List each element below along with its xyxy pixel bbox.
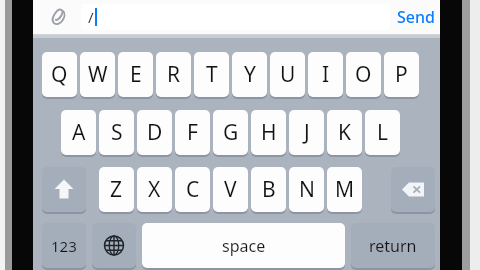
button[interactable]: F: [175, 110, 210, 157]
button[interactable]: V: [213, 167, 248, 214]
button[interactable]: T: [194, 52, 229, 99]
staticText: Q: [51, 60, 68, 89]
staticText: A: [72, 118, 86, 147]
staticText: M: [335, 175, 355, 204]
button[interactable]: D: [137, 110, 172, 157]
staticText: J: [304, 118, 310, 147]
button[interactable]: Z: [99, 167, 134, 214]
button[interactable]: Backspace: [391, 167, 435, 214]
button[interactable]: Y: [232, 52, 267, 99]
staticText: P: [395, 60, 408, 89]
staticText: return: [369, 235, 417, 257]
button[interactable]: N: [289, 167, 324, 214]
button[interactable]: /: [81, 4, 390, 30]
button[interactable]: J: [289, 110, 324, 157]
staticText: space: [222, 235, 266, 257]
button[interactable]: S: [99, 110, 134, 157]
button[interactable]: X: [137, 167, 172, 214]
button[interactable]: E: [118, 52, 153, 99]
button[interactable]: C: [175, 167, 210, 214]
button[interactable]: M: [327, 167, 362, 214]
staticText: D: [147, 118, 163, 147]
button[interactable]: P: [384, 52, 419, 99]
button[interactable]: return: [351, 223, 435, 270]
staticText: Y: [244, 60, 256, 89]
staticText: L: [377, 118, 389, 147]
staticText: R: [167, 60, 181, 89]
staticText: /: [88, 7, 94, 27]
button[interactable]: W: [80, 52, 115, 99]
staticText: K: [338, 118, 351, 147]
staticText: S: [111, 118, 123, 147]
staticText: C: [186, 175, 200, 204]
staticText: X: [148, 175, 161, 204]
button[interactable]: U: [270, 52, 305, 99]
staticText: T: [206, 60, 218, 89]
staticText: H: [261, 118, 277, 147]
button[interactable]: space: [142, 223, 345, 270]
button[interactable]: A: [61, 110, 96, 157]
button[interactable]: H: [251, 110, 286, 157]
button[interactable]: Send: [392, 3, 440, 31]
button[interactable]: O: [346, 52, 381, 99]
staticText: V: [224, 175, 237, 204]
button[interactable]: 123: [42, 223, 86, 270]
button[interactable]: Attach: [44, 3, 72, 31]
button[interactable]: G: [213, 110, 248, 157]
staticText: I: [322, 60, 330, 89]
staticText: B: [262, 175, 276, 204]
button[interactable]: R: [156, 52, 191, 99]
button[interactable]: K: [327, 110, 362, 157]
staticText: 123: [51, 236, 77, 256]
staticText: G: [223, 118, 239, 147]
staticText: N: [299, 175, 315, 204]
staticText: Z: [110, 175, 123, 204]
button[interactable]: B: [251, 167, 286, 214]
button[interactable]: I: [308, 52, 343, 99]
button[interactable]: Switch keyboard: [92, 223, 136, 270]
staticText: O: [355, 60, 372, 89]
button[interactable]: Q: [42, 52, 77, 99]
button[interactable]: L: [365, 110, 400, 157]
staticText: U: [280, 60, 296, 89]
staticText: E: [130, 60, 142, 89]
staticText: F: [187, 118, 198, 147]
staticText: W: [88, 60, 108, 89]
staticText: Send: [397, 6, 435, 28]
button[interactable]: Shift: [42, 167, 86, 214]
